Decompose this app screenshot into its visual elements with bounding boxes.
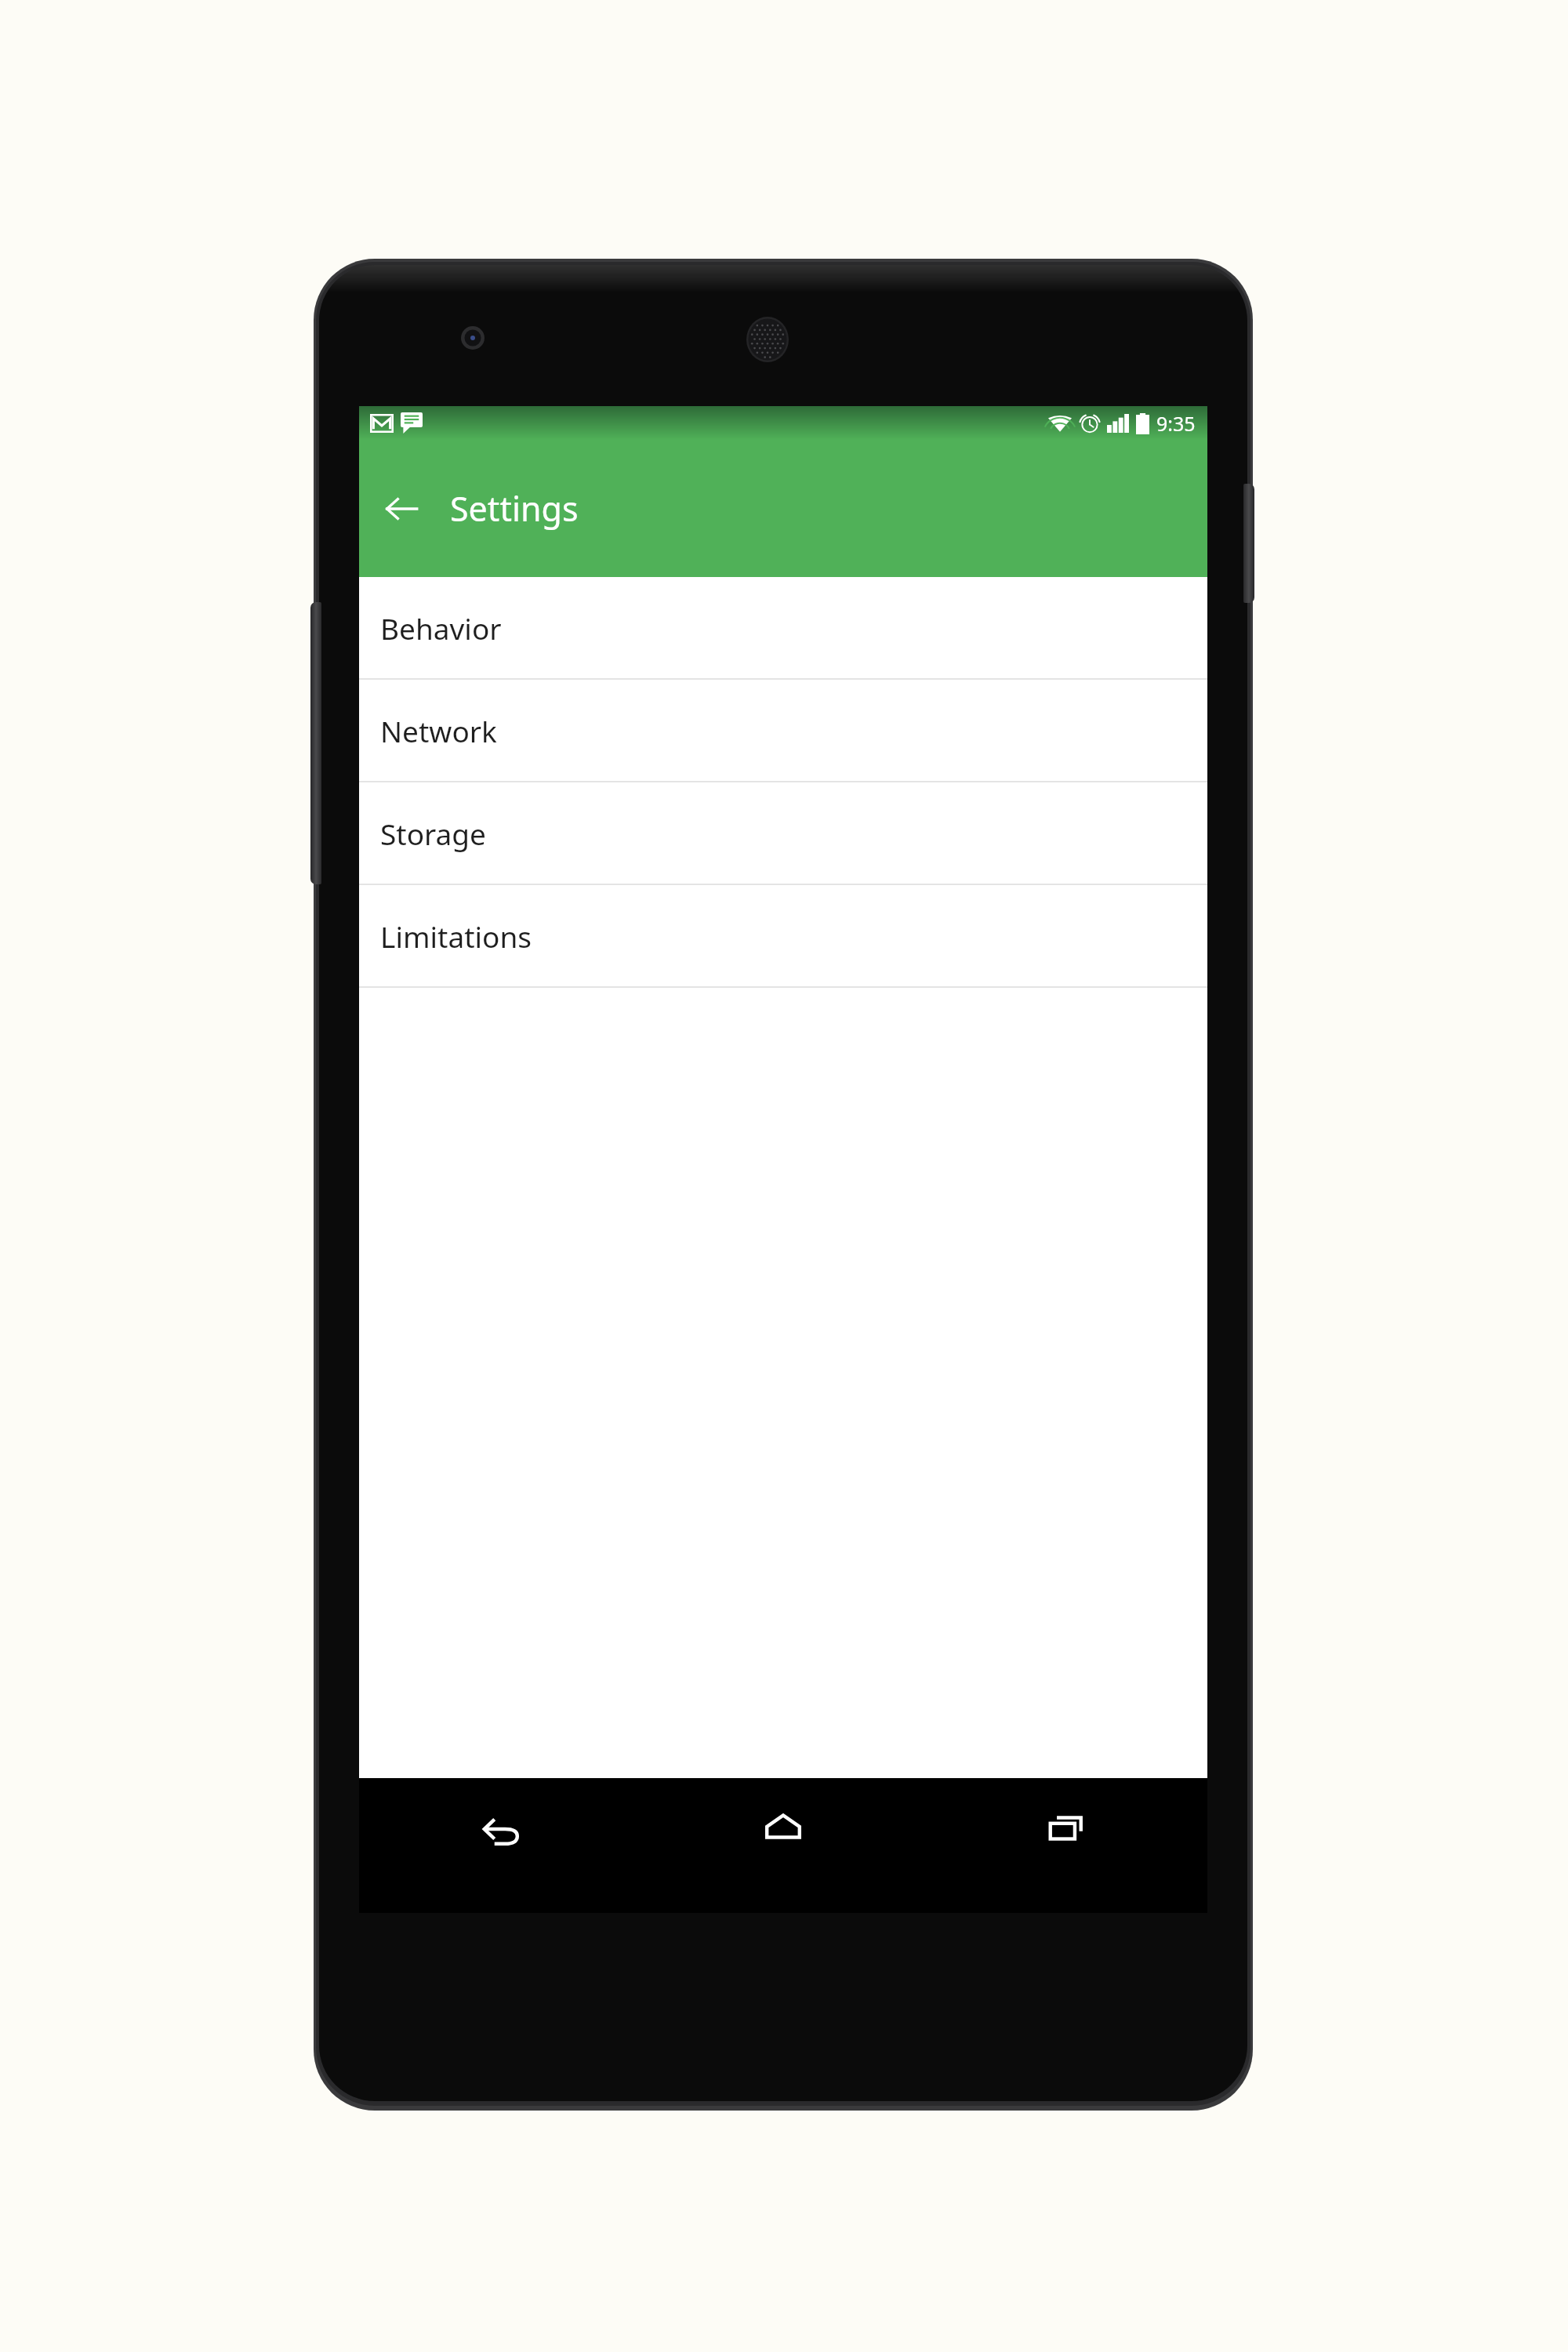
button[interactable]: Network [359, 680, 1207, 781]
button[interactable]: Limitations [359, 885, 1207, 986]
button[interactable]: Behavior [359, 577, 1207, 678]
button[interactable]: Recent apps [924, 1778, 1207, 1913]
staticText: Settings [450, 485, 579, 532]
button[interactable]: Back [359, 1778, 641, 1913]
button[interactable]: Navigate up [368, 476, 434, 542]
staticText: Behavior [380, 608, 502, 648]
staticText: 9:35 [1156, 410, 1196, 437]
staticText: Storage [380, 814, 486, 853]
button[interactable]: Storage [359, 782, 1207, 884]
button[interactable]: Home [641, 1778, 924, 1913]
staticText: Network [380, 711, 497, 750]
staticText: Limitations [380, 916, 532, 956]
